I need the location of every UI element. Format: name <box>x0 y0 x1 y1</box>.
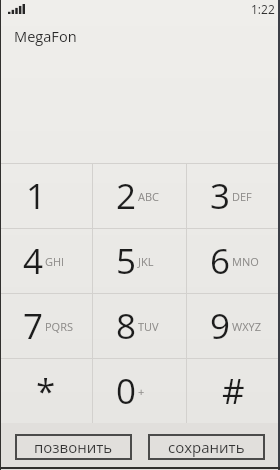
staticText: PQRS <box>45 319 73 334</box>
button[interactable]: 3 <box>187 164 280 228</box>
staticText: WXYZ <box>232 319 261 334</box>
staticText: 1:22 <box>251 1 275 17</box>
button[interactable]: 4 <box>0 229 92 293</box>
staticText: позвонить <box>34 437 113 457</box>
staticText: 2 <box>116 172 137 220</box>
staticText: JKL <box>138 254 154 269</box>
button[interactable]: сохранить <box>148 434 265 460</box>
staticText: TUV <box>138 319 159 334</box>
button[interactable]: 9 <box>187 294 280 358</box>
staticText: 1 <box>26 172 47 220</box>
other: Signal strength <box>8 4 25 14</box>
staticText: MegaFon <box>14 26 77 46</box>
staticText: 9 <box>210 302 231 350</box>
button[interactable]: * <box>0 359 92 423</box>
button[interactable]: 2 <box>93 164 186 228</box>
staticText: 6 <box>210 237 231 285</box>
staticText: + <box>138 384 145 399</box>
staticText: 8 <box>116 302 137 350</box>
staticText: MNO <box>232 254 259 269</box>
button[interactable]: 5 <box>93 229 186 293</box>
staticText: * <box>36 367 56 415</box>
staticText: DEF <box>232 189 252 204</box>
staticText: 0 <box>116 367 137 415</box>
button[interactable]: 0 <box>93 359 186 423</box>
button[interactable]: # <box>187 359 280 423</box>
button[interactable]: 7 <box>0 294 92 358</box>
staticText: ABC <box>138 189 159 204</box>
button[interactable]: 1 <box>0 164 92 228</box>
button[interactable]: 8 <box>93 294 186 358</box>
staticText: GHI <box>45 254 65 269</box>
button[interactable]: позвонить <box>15 434 132 460</box>
staticText: # <box>222 367 245 415</box>
staticText: 5 <box>116 237 137 285</box>
staticText: 7 <box>23 302 44 350</box>
staticText: сохранить <box>168 437 245 457</box>
staticText: 4 <box>23 237 44 285</box>
staticText: 3 <box>210 172 231 220</box>
button[interactable]: 6 <box>187 229 280 293</box>
